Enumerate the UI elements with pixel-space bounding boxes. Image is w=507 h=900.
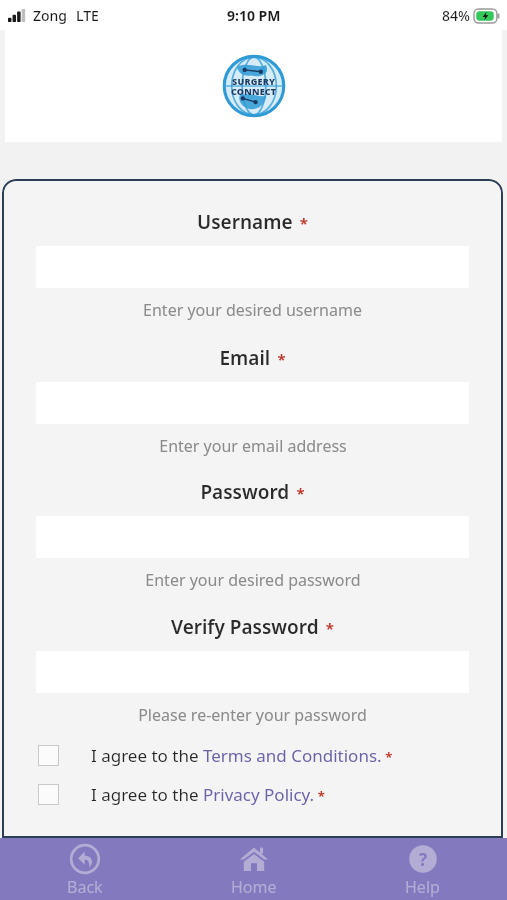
staticText: ? bbox=[419, 848, 428, 871]
staticText: Verify Password * bbox=[171, 614, 334, 640]
staticText: Home bbox=[231, 876, 277, 898]
staticText: Help bbox=[405, 876, 440, 898]
staticText: SURGERY bbox=[232, 75, 276, 87]
staticText: Email * bbox=[219, 345, 286, 371]
staticText: I agree to the Terms and Conditions. * bbox=[91, 744, 393, 767]
button[interactable]: Home bbox=[169, 838, 338, 900]
staticText: Back bbox=[67, 876, 103, 898]
staticText: Enter your desired username bbox=[143, 299, 362, 321]
button[interactable]: Back bbox=[0, 838, 169, 900]
staticText: 84% bbox=[442, 6, 470, 25]
staticText: Enter your desired password bbox=[145, 569, 361, 591]
staticText: Please re-enter your password bbox=[138, 704, 367, 726]
button[interactable]: I agree to the Privacy Policy. * bbox=[2, 783, 503, 806]
staticText: I agree to the Privacy Policy. * bbox=[91, 783, 325, 806]
staticText: Zong bbox=[33, 6, 68, 25]
button[interactable]: I agree to the Terms and Conditions. * bbox=[2, 744, 503, 767]
staticText: Password * bbox=[200, 479, 305, 505]
button[interactable]: Help bbox=[338, 838, 507, 900]
staticText: Username * bbox=[197, 209, 308, 235]
staticText: 9:10 PM bbox=[227, 6, 281, 25]
staticText: Enter your email address bbox=[159, 435, 347, 457]
staticText: CONNECT bbox=[231, 85, 277, 97]
staticText: LTE bbox=[76, 6, 99, 25]
